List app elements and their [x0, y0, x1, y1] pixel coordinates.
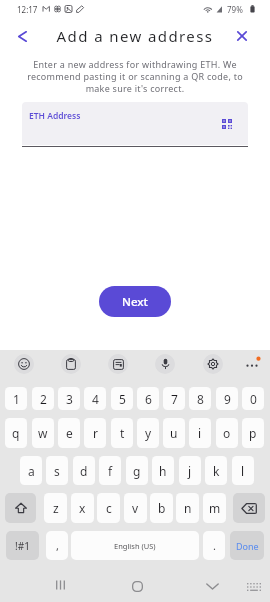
staticText: !#1: [15, 539, 30, 553]
button[interactable]: q: [5, 418, 27, 448]
button[interactable]: Emoji: [14, 354, 34, 374]
button[interactable]: u: [163, 418, 185, 448]
staticText: y: [145, 425, 152, 441]
staticText: j: [188, 463, 192, 479]
button[interactable]: 3: [58, 387, 80, 410]
button[interactable]: n: [176, 493, 199, 523]
button[interactable]: w: [32, 418, 54, 448]
staticText: b: [158, 500, 166, 516]
button[interactable]: .: [203, 531, 225, 560]
button[interactable]: v: [124, 493, 147, 523]
button[interactable]: !#1: [6, 531, 39, 560]
button[interactable]: 6: [137, 387, 159, 410]
button[interactable]: 0: [242, 387, 264, 410]
button[interactable]: z: [44, 493, 67, 523]
button[interactable]: Switch keyboard: [240, 573, 268, 601]
staticText: n: [184, 500, 192, 516]
button[interactable]: k: [205, 456, 227, 485]
button[interactable]: d: [73, 456, 95, 485]
staticText: u: [170, 425, 178, 441]
button[interactable]: r: [84, 418, 106, 448]
button[interactable]: 8: [189, 387, 211, 410]
button[interactable]: Recents: [44, 569, 76, 601]
staticText: k: [213, 463, 220, 479]
staticText: 4: [92, 391, 99, 407]
button[interactable]: [22, 102, 248, 145]
button[interactable]: g: [126, 456, 148, 485]
staticText: ,: [56, 538, 59, 553]
button[interactable]: Close: [228, 22, 256, 50]
staticText: 5: [119, 391, 126, 407]
staticText: 6: [145, 391, 152, 407]
staticText: t: [120, 425, 125, 441]
button[interactable]: a: [20, 456, 42, 485]
staticText: o: [223, 425, 231, 441]
button[interactable]: 2: [32, 387, 54, 410]
button[interactable]: Next: [99, 286, 171, 317]
button[interactable]: Shift: [5, 493, 36, 523]
button[interactable]: 4: [84, 387, 106, 410]
button[interactable]: o: [216, 418, 238, 448]
button[interactable]: e: [58, 418, 80, 448]
staticText: 3: [66, 391, 73, 407]
button[interactable]: x: [71, 493, 94, 523]
button[interactable]: English (US): [71, 531, 199, 560]
button[interactable]: Clipboard: [61, 354, 81, 374]
staticText: e: [66, 425, 73, 441]
button[interactable]: 9: [216, 387, 238, 410]
staticText: m: [209, 500, 221, 516]
staticText: 8: [197, 391, 204, 407]
staticText: v: [132, 500, 139, 516]
button[interactable]: b: [150, 493, 173, 523]
button[interactable]: p: [242, 418, 264, 448]
staticText: z: [53, 500, 59, 516]
staticText: English (US): [114, 541, 156, 551]
button[interactable]: Hide keyboard: [196, 570, 228, 602]
button[interactable]: 7: [163, 387, 185, 410]
button[interactable]: Text editing: [108, 354, 128, 374]
button[interactable]: c: [97, 493, 120, 523]
button[interactable]: Scan QR code: [216, 113, 238, 135]
staticText: l: [241, 463, 245, 479]
staticText: Done: [236, 540, 259, 552]
button[interactable]: t: [111, 418, 133, 448]
button[interactable]: l: [232, 456, 254, 485]
staticText: 1: [13, 391, 20, 407]
button[interactable]: Voice input: [155, 354, 175, 374]
staticText: h: [159, 463, 167, 479]
button[interactable]: 5: [111, 387, 133, 410]
staticText: a: [28, 463, 35, 479]
staticText: Enter a new address for withdrawing ETH.…: [0, 58, 270, 94]
staticText: .: [213, 538, 216, 553]
staticText: 79%: [227, 4, 243, 15]
button[interactable]: Backspace: [233, 493, 265, 523]
staticText: 2: [40, 391, 47, 407]
staticText: f: [108, 463, 113, 479]
staticText: g: [133, 463, 141, 479]
button[interactable]: More options: [241, 353, 263, 375]
button[interactable]: j: [179, 456, 201, 485]
button[interactable]: m: [203, 493, 226, 523]
button[interactable]: f: [99, 456, 121, 485]
button[interactable]: h: [152, 456, 174, 485]
staticText: d: [80, 463, 88, 479]
staticText: r: [93, 425, 98, 441]
button[interactable]: s: [46, 456, 68, 485]
button[interactable]: Home: [121, 570, 153, 602]
staticText: w: [38, 425, 48, 441]
button[interactable]: ,: [46, 531, 68, 560]
button[interactable]: y: [137, 418, 159, 448]
staticText: 7: [171, 391, 178, 407]
staticText: 12:17: [17, 4, 38, 15]
staticText: i: [198, 425, 202, 441]
staticText: s: [54, 463, 60, 479]
staticText: 9: [224, 391, 231, 407]
staticText: x: [79, 500, 86, 516]
button[interactable]: Back: [8, 22, 36, 50]
button[interactable]: Keyboard settings: [203, 354, 223, 374]
button[interactable]: i: [189, 418, 211, 448]
button[interactable]: Done: [230, 531, 264, 560]
staticText: c: [106, 500, 112, 516]
button[interactable]: 1: [5, 387, 27, 410]
staticText: q: [12, 425, 20, 441]
